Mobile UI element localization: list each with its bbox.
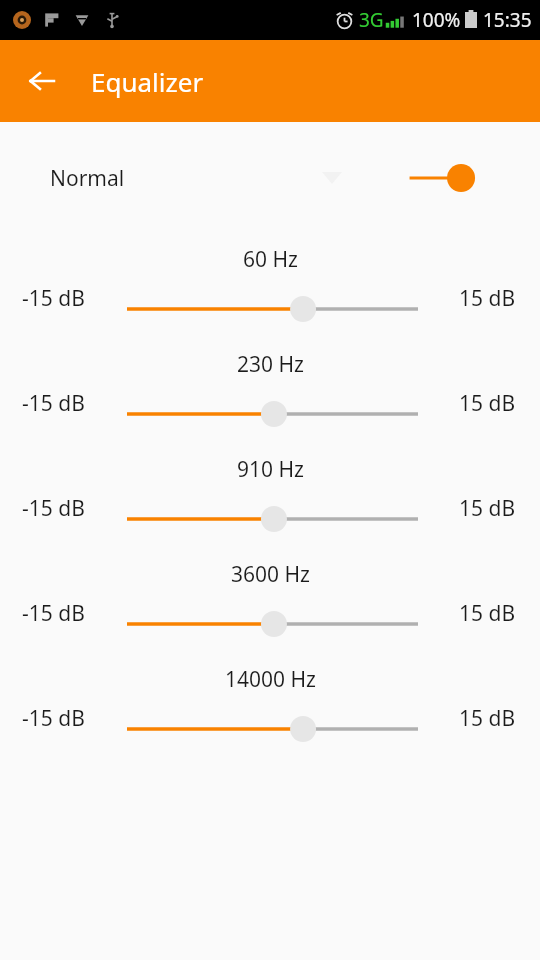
staticText: 15 dB: [459, 704, 516, 733]
staticText: 230 Hz: [237, 350, 304, 379]
button[interactable]: 14000 Hz level: [112, 708, 434, 750]
staticText: 15 dB: [459, 389, 516, 418]
button[interactable]: 230 Hz level: [112, 393, 434, 435]
button[interactable]: 3600 Hz level: [112, 603, 434, 645]
button[interactable]: 910 Hz level: [112, 498, 434, 540]
staticText: -15 dB: [22, 599, 85, 628]
staticText: Equalizer: [91, 64, 204, 99]
button[interactable]: Back: [18, 57, 66, 105]
staticText: -15 dB: [22, 704, 85, 733]
button[interactable]: Enable equalizer: [408, 158, 486, 198]
button[interactable]: 60 Hz level: [112, 288, 434, 330]
staticText: 60 Hz: [243, 245, 298, 274]
staticText: 100%: [412, 7, 461, 33]
staticText: 15:35: [483, 7, 532, 33]
staticText: 910 Hz: [237, 455, 304, 484]
staticText: 3600 Hz: [231, 560, 310, 589]
staticText: -15 dB: [22, 284, 85, 313]
staticText: -15 dB: [22, 389, 85, 418]
staticText: 3G: [359, 7, 384, 33]
staticText: 15 dB: [459, 494, 516, 523]
staticText: Normal: [50, 164, 125, 193]
button[interactable]: Normal: [0, 152, 540, 204]
staticText: -15 dB: [22, 494, 85, 523]
staticText: 15 dB: [459, 284, 516, 313]
staticText: 14000 Hz: [225, 665, 316, 694]
staticText: 15 dB: [459, 599, 516, 628]
